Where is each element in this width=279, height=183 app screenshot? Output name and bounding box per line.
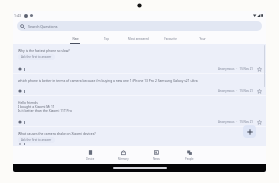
button[interactable]: New xyxy=(59,33,90,44)
staticText: which phone is better in terms of camera… xyxy=(18,78,198,82)
staticText: I bought a Xiaomi Mi 11 xyxy=(18,104,55,108)
staticText: Favourite xyxy=(164,37,177,41)
button[interactable]: Why is the fastest phone so slow? xyxy=(13,44,266,73)
staticText: Why is the fastest phone so slow? xyxy=(18,48,70,52)
button[interactable]: Most answered xyxy=(122,33,154,44)
staticText: People xyxy=(185,157,194,161)
staticText: What causes the camera shake on Xiaomi d… xyxy=(18,131,96,135)
button[interactable]: Add question xyxy=(243,125,256,138)
button[interactable]: Ask the first to answer xyxy=(18,137,55,143)
button[interactable]: Search Questions xyxy=(17,21,262,31)
staticText: Memory xyxy=(118,157,129,161)
button[interactable]: People xyxy=(173,146,206,164)
staticText: News xyxy=(153,157,160,161)
staticText: Ask the first to answer xyxy=(21,55,52,59)
button[interactable]: which phone is better in terms of camera… xyxy=(13,74,266,95)
button[interactable]: Hello friends xyxy=(13,96,266,126)
button[interactable]: Your xyxy=(186,33,218,44)
staticText: Your xyxy=(199,37,206,41)
button[interactable]: Memory xyxy=(107,146,140,164)
staticText: Search Questions xyxy=(28,24,58,29)
other: Favourite xyxy=(257,67,262,72)
staticText: Ask the first to answer xyxy=(21,138,52,142)
staticText: Most answered xyxy=(128,37,149,41)
button[interactable]: Ask the first to answer xyxy=(18,54,55,60)
staticText: Anonymous · 15 Nov 21 xyxy=(218,89,254,93)
staticText: 1:43 xyxy=(14,13,21,18)
button[interactable]: Top xyxy=(90,33,122,44)
staticText: Anonymous · 15 Nov 21 xyxy=(218,67,254,71)
staticText: Anonymous · 15 Nov 21 xyxy=(218,120,254,124)
staticText: Device xyxy=(86,157,95,161)
staticText: Top xyxy=(104,37,109,41)
other: Favourite xyxy=(257,120,262,125)
staticText: Hello friends xyxy=(18,100,38,104)
other: Favourite xyxy=(257,89,262,94)
staticText: New xyxy=(72,37,79,41)
staticText: Is it better than the Xiaomi 11T Pro xyxy=(18,108,72,112)
button[interactable]: Device xyxy=(74,146,107,164)
button[interactable]: What causes the camera shake on Xiaomi d… xyxy=(13,127,266,146)
button[interactable]: News xyxy=(140,146,173,164)
button[interactable]: Favourite xyxy=(154,33,186,44)
